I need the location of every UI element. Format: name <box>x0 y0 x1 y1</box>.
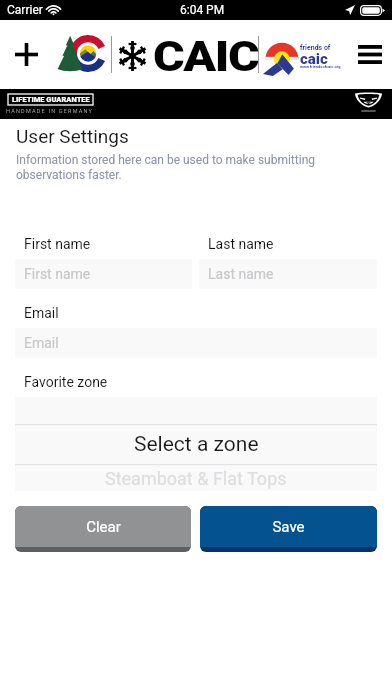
button[interactable]: LIFETIME GUARANTEE <box>0 89 392 119</box>
staticText: Select a zone <box>134 432 259 457</box>
staticText: Favorite zone <box>24 374 108 390</box>
staticText: Carrier <box>7 3 43 17</box>
button[interactable]: First name <box>15 259 192 289</box>
staticText: User Settings <box>16 125 129 147</box>
staticText: caic <box>300 50 328 68</box>
staticText: friends of <box>300 44 331 52</box>
button[interactable]: Add observation <box>6 30 46 78</box>
staticText: Last name <box>208 236 274 252</box>
staticText: First name <box>24 266 91 282</box>
staticText: www.friendsofcaic.org <box>300 64 341 69</box>
staticText: Email <box>24 305 59 321</box>
staticText: HANDMADE IN GERMANY <box>6 108 94 114</box>
staticText: Email <box>24 335 59 351</box>
staticText: Save <box>272 518 305 536</box>
button[interactable]: Save <box>200 506 377 552</box>
staticText: First name <box>24 236 91 252</box>
staticText: Last name <box>208 266 274 282</box>
staticText: CAIC <box>153 32 259 80</box>
staticText: Information stored here can be used to m… <box>16 153 328 182</box>
staticText: Clear <box>86 518 121 536</box>
staticText: 6:04 PM <box>180 3 225 17</box>
button[interactable]: Last name <box>199 259 377 289</box>
button[interactable]: Select a zone <box>15 424 377 464</box>
staticText: LIFETIME GUARANTEE <box>12 95 90 104</box>
button[interactable]: Clear <box>15 506 191 552</box>
button[interactable]: Email <box>15 328 377 358</box>
button[interactable]: Menu <box>348 30 392 78</box>
staticText: Steamboat & Flat Tops <box>105 468 287 489</box>
